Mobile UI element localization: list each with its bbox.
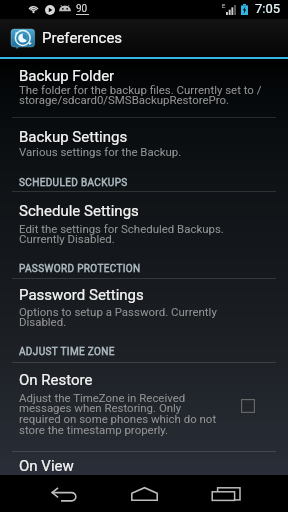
button[interactable]: Schedule Settings xyxy=(0,194,288,246)
staticText: The folder for the backup files. Current… xyxy=(19,83,262,107)
staticText: Adjust the TimeZone in Received messages… xyxy=(19,391,217,437)
staticText: Password Settings xyxy=(19,286,144,304)
button[interactable]: Backup Folder xyxy=(0,59,288,117)
staticText: PASSWORD PROTECTION xyxy=(19,263,141,275)
button[interactable] xyxy=(0,19,288,57)
staticText: Backup Folder xyxy=(19,67,115,85)
staticText: 7:05 xyxy=(255,1,281,16)
staticText: ADJUST TIME ZONE xyxy=(19,346,115,358)
staticText: Preferences xyxy=(42,29,123,47)
button[interactable]: On Restore xyxy=(0,363,288,450)
button[interactable]: Backup Settings xyxy=(0,120,288,170)
staticText: Options to setup a Password. Currently D… xyxy=(19,305,217,329)
button[interactable]: Back xyxy=(23,475,106,512)
button[interactable]: On View xyxy=(0,449,288,478)
staticText: Backup Settings xyxy=(19,128,128,146)
button[interactable]: Password Settings xyxy=(0,278,288,330)
staticText: On Restore xyxy=(19,371,93,389)
staticText: Schedule Settings xyxy=(19,202,139,220)
staticText: On View xyxy=(19,457,74,475)
staticText: SCHEDULED BACKUPS xyxy=(19,177,128,189)
staticText: Edit the settings for Scheduled Backups.… xyxy=(19,222,224,246)
staticText: E xyxy=(222,2,226,9)
staticText: Various settings for the Backup. xyxy=(19,145,182,158)
staticText: 90 xyxy=(76,3,88,15)
button[interactable]: Home xyxy=(106,475,182,512)
button[interactable]: Recent apps xyxy=(184,475,267,512)
